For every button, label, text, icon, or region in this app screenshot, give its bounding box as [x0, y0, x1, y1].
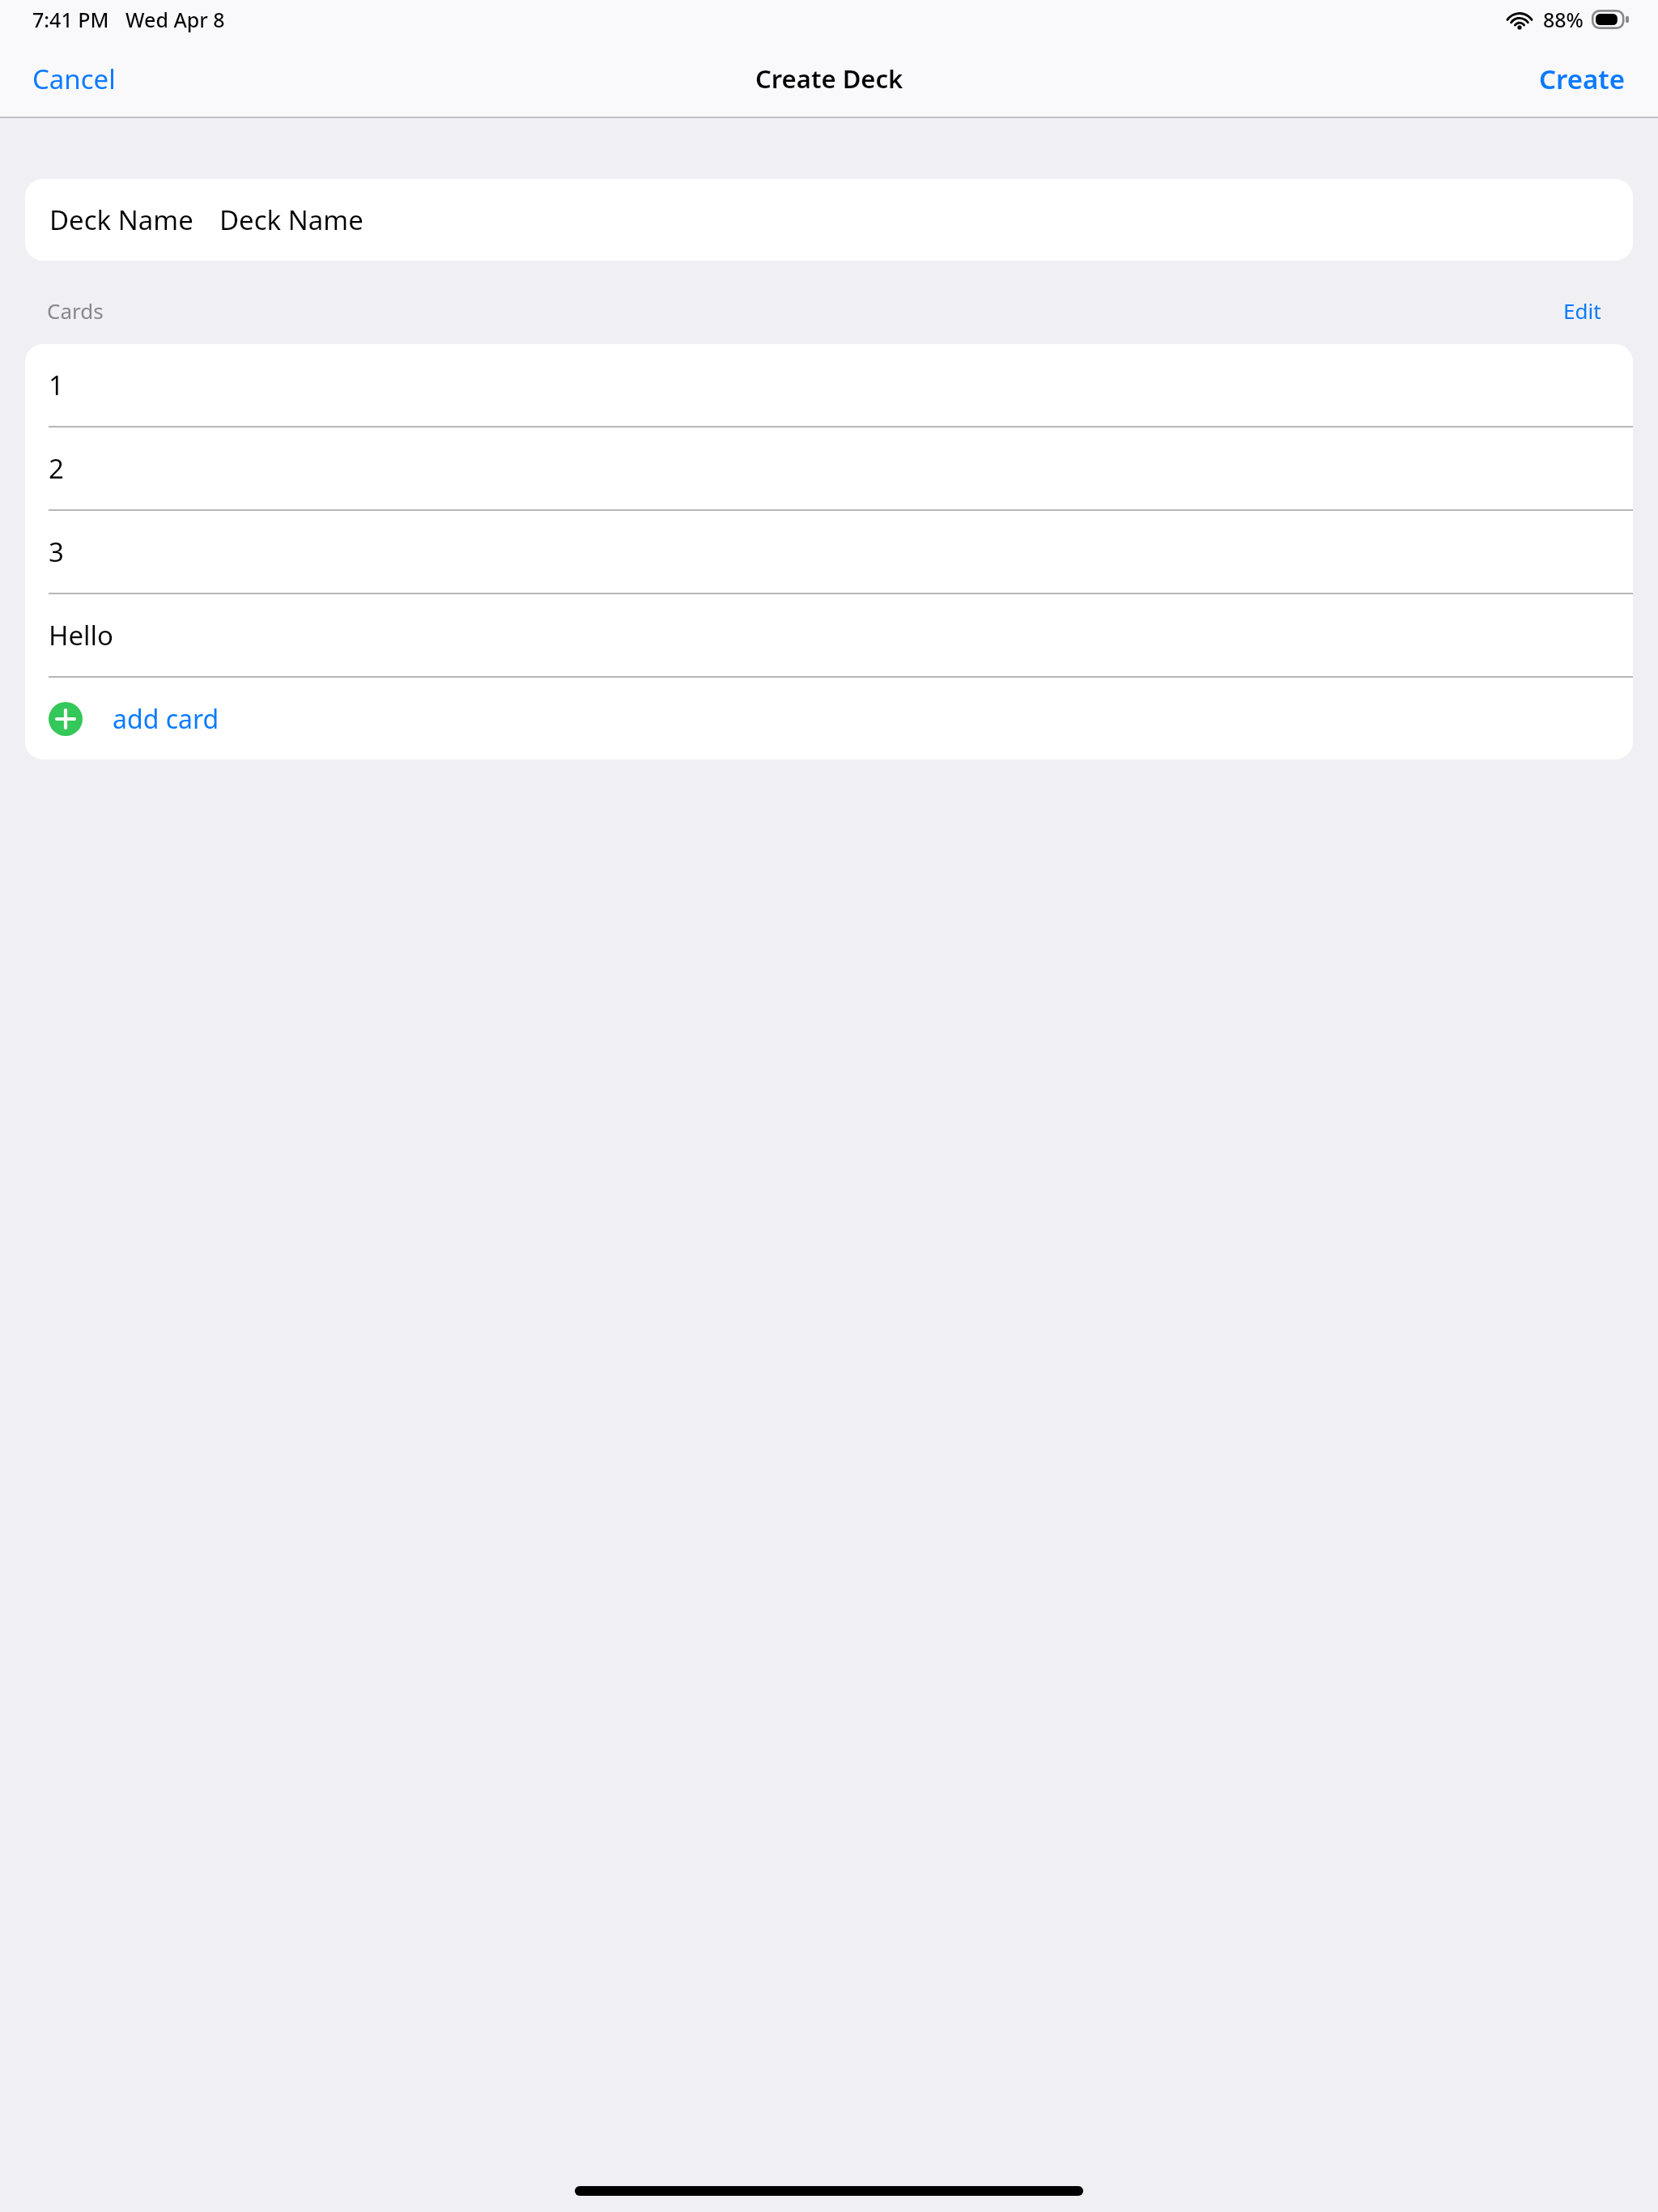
staticText: Wed Apr 8 [125, 6, 225, 33]
staticText: Cancel [32, 61, 116, 97]
button[interactable]: Create [1521, 51, 1643, 107]
other: Add card [49, 702, 83, 736]
button[interactable]: Edit [1557, 291, 1608, 330]
button[interactable]: 3 [25, 511, 1633, 593]
button[interactable]: Hello [25, 594, 1633, 676]
staticText: 3 [49, 534, 64, 570]
button[interactable]: Deck Name [25, 179, 1633, 261]
staticText: Create [1539, 61, 1626, 97]
button[interactable]: Cancel [15, 51, 134, 107]
staticText: Hello [49, 617, 114, 653]
other: Battery 88 percent [1592, 10, 1629, 29]
staticText: Edit [1563, 296, 1601, 325]
staticText: 2 [49, 450, 64, 487]
staticText: 88% [1543, 6, 1584, 33]
staticText: 1 [49, 367, 64, 403]
other: Wi-Fi [1506, 9, 1533, 30]
staticText: add card [113, 701, 219, 737]
staticText: Deck Name [219, 202, 363, 238]
staticText: Create Deck [755, 62, 903, 96]
button[interactable]: 2 [25, 428, 1633, 509]
staticText: Deck Name [49, 202, 193, 238]
staticText: Cards [47, 296, 104, 325]
button[interactable]: Add card [25, 678, 1633, 759]
staticText: 7:41 PM [32, 6, 109, 33]
button[interactable]: 1 [25, 344, 1633, 426]
